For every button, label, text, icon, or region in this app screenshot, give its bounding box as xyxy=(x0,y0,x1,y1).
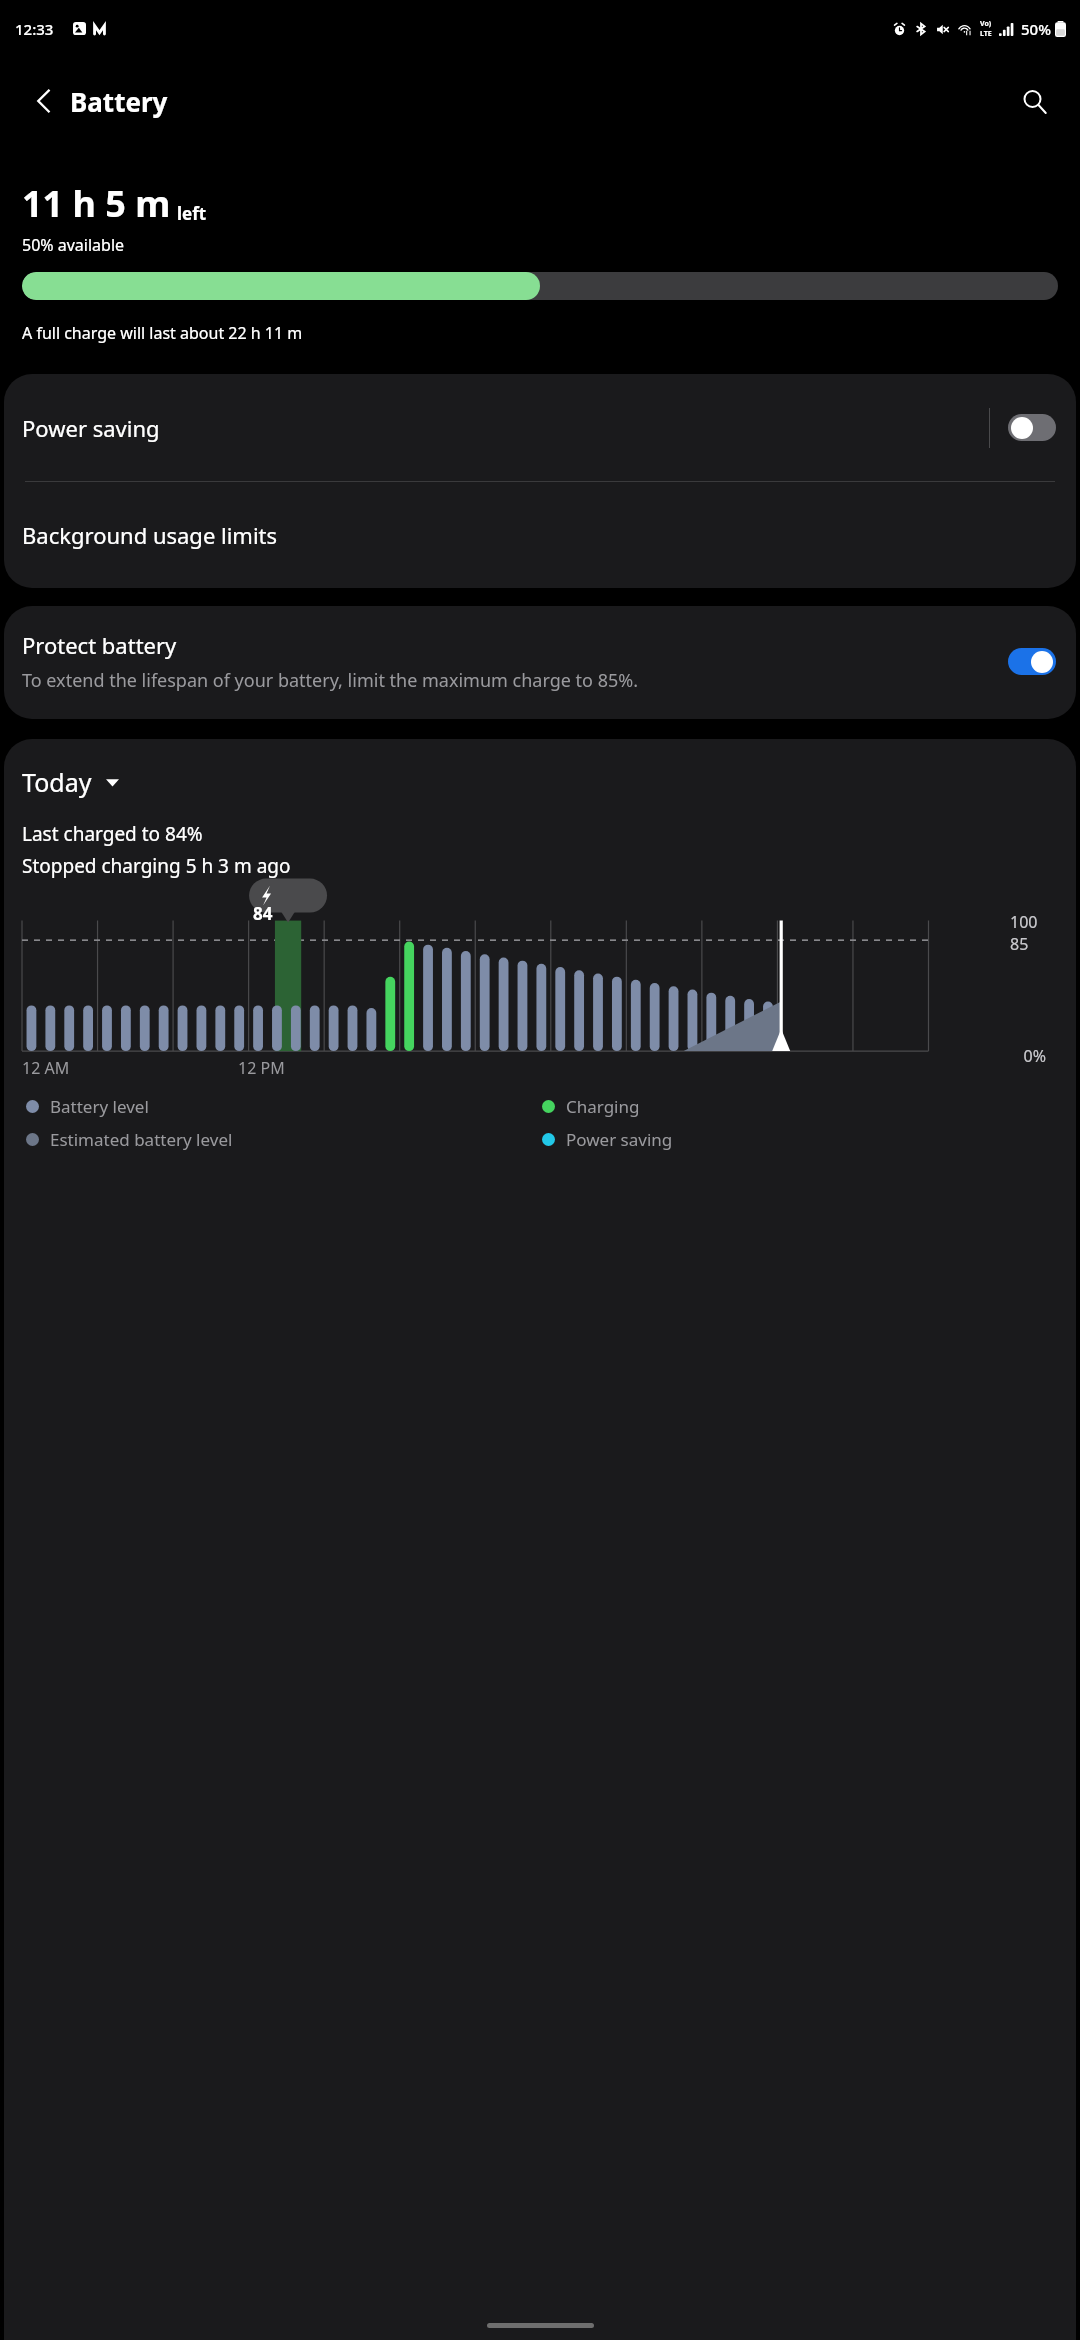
staticText: 100 xyxy=(1010,911,1038,933)
staticText: 50% xyxy=(1021,19,1051,39)
button[interactable]: Power saving xyxy=(4,374,1076,481)
button[interactable]: Background usage limits xyxy=(4,482,1076,588)
staticText: Today xyxy=(22,765,92,799)
button[interactable]: Back xyxy=(18,75,70,127)
staticText: Battery level xyxy=(50,1095,149,1118)
staticText: 12 PM xyxy=(238,1057,285,1079)
staticText: 0% xyxy=(1023,1045,1046,1067)
staticText: 50% available xyxy=(22,234,125,256)
staticText: 84 xyxy=(253,902,273,925)
staticText: A full charge will last about 22 h 11 m xyxy=(22,322,303,344)
staticText: left xyxy=(177,202,207,225)
button[interactable]: Search xyxy=(1008,75,1060,127)
staticText: 12 AM xyxy=(22,1057,70,1079)
staticText: Stopped charging 5 h 3 m ago xyxy=(22,853,291,879)
staticText: Charging xyxy=(566,1095,640,1118)
staticText: Background usage limits xyxy=(22,520,278,550)
button[interactable]: Today xyxy=(22,765,119,799)
staticText: LTE xyxy=(980,29,992,39)
button[interactable]: Toggle on xyxy=(1008,648,1056,675)
staticText: Protect battery xyxy=(22,630,177,660)
staticText: Battery xyxy=(70,84,168,119)
button[interactable]: Protect battery xyxy=(4,606,1076,719)
staticText: Power saving xyxy=(22,413,989,443)
staticText: 11 h 5 m xyxy=(22,179,171,228)
staticText: Estimated battery level xyxy=(50,1128,233,1151)
staticText: 12:33 xyxy=(15,19,54,39)
button[interactable]: Toggle off xyxy=(1008,414,1056,441)
staticText: Last charged to 84% xyxy=(22,821,203,847)
staticText: Power saving xyxy=(566,1128,673,1151)
staticText: 85 xyxy=(1010,933,1029,955)
staticText: Vo) xyxy=(980,19,992,29)
staticText: To extend the lifespan of your battery, … xyxy=(22,668,639,693)
